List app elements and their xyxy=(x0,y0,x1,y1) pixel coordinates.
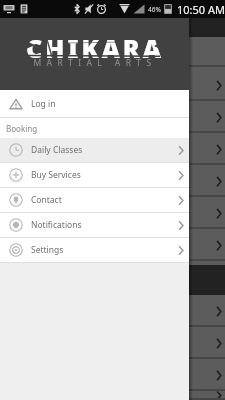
button[interactable]: Settings xyxy=(0,238,189,262)
button[interactable] xyxy=(0,101,225,133)
button[interactable] xyxy=(0,295,225,327)
button[interactable] xyxy=(0,197,225,229)
staticText: 46% xyxy=(148,5,161,14)
staticText: Booking xyxy=(6,123,38,134)
staticText: Daily Classes xyxy=(31,144,83,156)
button[interactable]: Notifications xyxy=(0,213,189,237)
button[interactable] xyxy=(0,133,225,165)
button[interactable] xyxy=(0,229,225,261)
staticText: Notifications xyxy=(31,219,82,231)
staticText: Buy Services xyxy=(31,169,81,181)
button[interactable] xyxy=(0,165,225,197)
button[interactable] xyxy=(0,391,225,400)
button[interactable]: Buy Services xyxy=(0,163,189,187)
staticText: Contact xyxy=(31,194,62,206)
button[interactable]: Log in xyxy=(0,90,189,117)
staticText: Log in xyxy=(31,98,56,110)
button[interactable]: Daily Classes xyxy=(0,138,189,162)
staticText: 10:50 AM xyxy=(177,2,225,17)
button[interactable] xyxy=(0,327,225,359)
button[interactable] xyxy=(0,69,225,101)
staticText: Settings xyxy=(31,244,64,256)
staticText: MARTIAL ARTS xyxy=(33,57,157,69)
button[interactable] xyxy=(0,359,225,391)
button[interactable]: Contact xyxy=(0,188,189,212)
staticText: CHIKARA xyxy=(26,31,164,65)
